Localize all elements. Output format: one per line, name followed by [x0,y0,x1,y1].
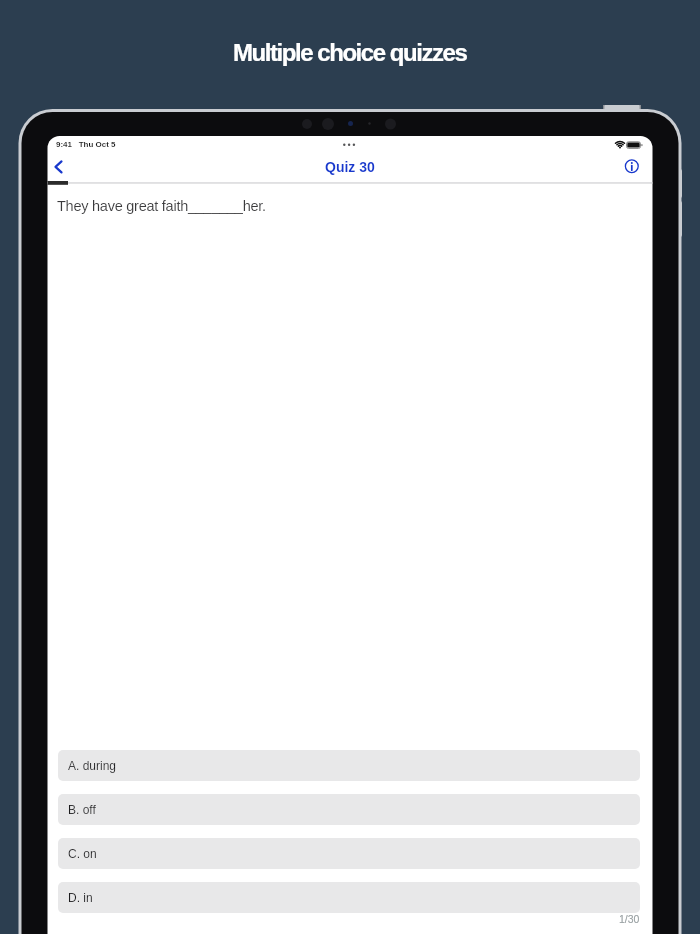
staticText: D. in [68,891,93,904]
button[interactable] [50,156,70,176]
staticText: C. on [68,847,97,860]
staticText: 1/30 [619,913,640,925]
staticText: B. off [68,803,96,816]
staticText: A. during [68,759,117,772]
button[interactable]: C. on [58,838,640,869]
staticText: 9:41 Thu Oct 5 [56,140,116,149]
button[interactable]: B. off [58,794,640,825]
staticText: Quiz 30 [325,159,375,175]
staticText: Multiple choice quizzes [233,39,467,66]
button[interactable] [622,156,642,176]
button[interactable]: D. in [58,882,640,913]
button[interactable]: A. during [58,750,640,781]
staticText: They have great faith_______her. [57,198,266,214]
